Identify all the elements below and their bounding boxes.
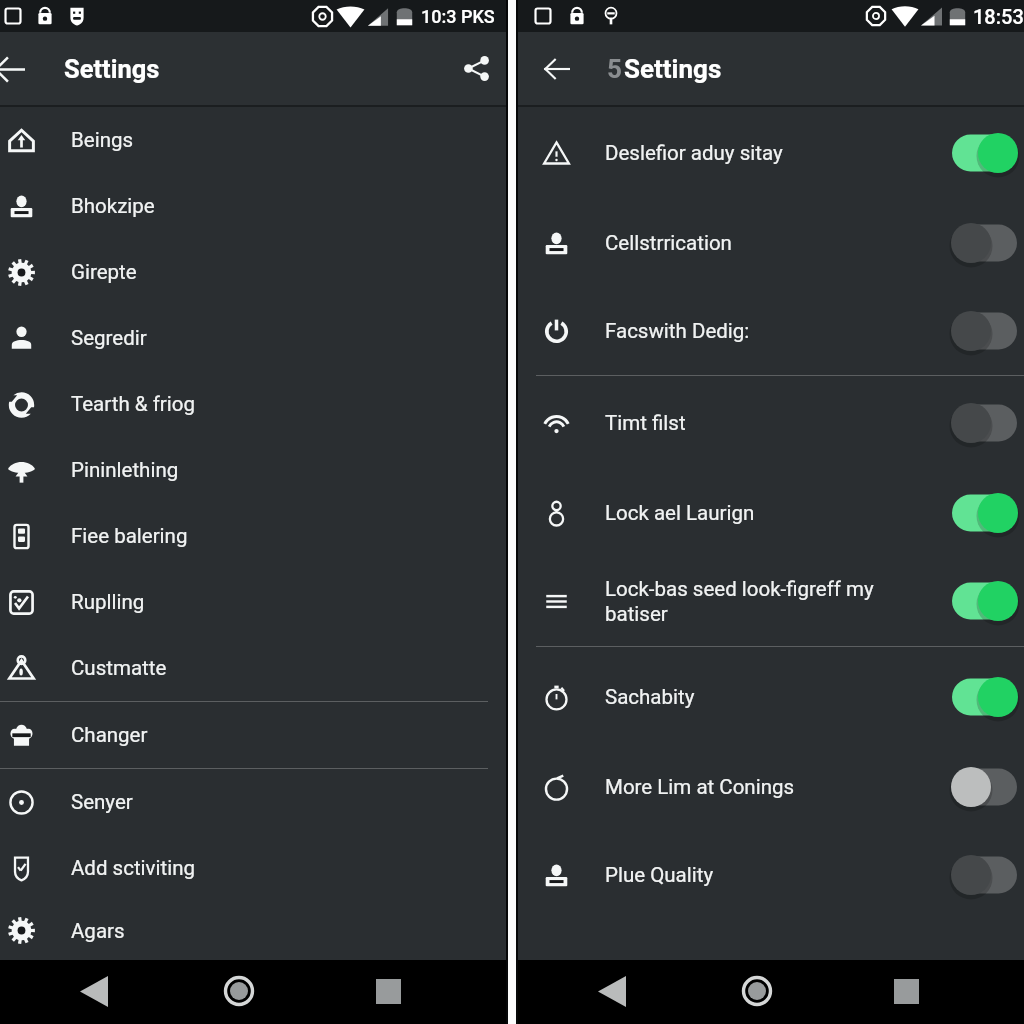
button[interactable]: Recents xyxy=(906,960,1024,1024)
staticText: Facswith Dedig: xyxy=(605,319,952,343)
button[interactable]: Segredir xyxy=(0,305,506,371)
button[interactable]: Navigate up xyxy=(0,42,36,96)
button[interactable]: Back xyxy=(94,960,239,1024)
staticText: Segredir xyxy=(71,326,147,350)
staticText: Deslefior aduy sitay xyxy=(605,141,952,165)
button[interactable]: Cellstrrication xyxy=(518,199,1024,287)
staticText: Agars xyxy=(71,919,125,943)
staticText: Plue Quality xyxy=(605,863,952,887)
button[interactable]: Timt filst xyxy=(518,376,1024,470)
button[interactable]: Agars xyxy=(0,901,506,960)
staticText: Senyer xyxy=(71,790,133,814)
button[interactable]: Custmatte xyxy=(0,635,506,701)
button[interactable]: Share xyxy=(454,47,498,91)
button[interactable]: Navigate up xyxy=(533,45,581,93)
button[interactable]: Ruplling xyxy=(0,569,506,635)
button[interactable]: Plue Quality xyxy=(518,827,1024,923)
staticText: More Lim at Conings xyxy=(605,775,952,799)
staticText: 10:3 PKS xyxy=(421,6,495,27)
staticText: 18:53 xyxy=(973,5,1024,28)
staticText: Bhokzipe xyxy=(71,194,155,218)
staticText: Lock-bas seed look-figreff my batiser xyxy=(605,577,952,626)
staticText: Cellstrrication xyxy=(605,231,952,255)
button[interactable]: Add sctiviting xyxy=(0,835,506,901)
button[interactable]: Sachabity xyxy=(518,647,1024,747)
staticText: Lock ael Laurign xyxy=(605,501,952,525)
staticText: Pininlething xyxy=(71,458,179,482)
staticText: Settings xyxy=(64,54,160,84)
button[interactable]: Deslefior aduy sitay xyxy=(518,107,1024,199)
button[interactable]: Girepte xyxy=(0,239,506,305)
button[interactable]: Bhokzipe xyxy=(0,173,506,239)
button[interactable]: Fiee balering xyxy=(0,503,506,569)
staticText: Custmatte xyxy=(71,656,167,680)
button[interactable]: Recents xyxy=(388,960,506,1024)
button[interactable]: More Lim at Conings xyxy=(518,747,1024,827)
button[interactable]: Tearth & friog xyxy=(0,371,506,437)
staticText: Girepte xyxy=(71,260,137,284)
button[interactable]: Home xyxy=(239,960,388,1024)
button[interactable]: Changer xyxy=(0,702,506,768)
button[interactable]: Lock ael Laurign xyxy=(518,470,1024,556)
button[interactable]: Beings xyxy=(0,107,506,173)
staticText: Add sctiviting xyxy=(71,856,196,880)
staticText: Sachabity xyxy=(605,685,952,709)
staticText: Beings xyxy=(71,128,134,152)
staticText: Settings xyxy=(624,54,722,84)
staticText: Changer xyxy=(71,723,148,747)
staticText: Tearth & friog xyxy=(71,392,195,416)
button[interactable]: Lock-bas seed look-figreff my batiser xyxy=(518,556,1024,646)
button[interactable]: Senyer xyxy=(0,769,506,835)
staticText: Timt filst xyxy=(605,411,952,435)
staticText: 5 xyxy=(607,54,622,84)
button[interactable]: Home xyxy=(757,960,906,1024)
button[interactable]: Back xyxy=(612,960,757,1024)
button[interactable]: Facswith Dedig: xyxy=(518,287,1024,375)
button[interactable]: Pininlething xyxy=(0,437,506,503)
staticText: Ruplling xyxy=(71,590,145,614)
staticText: Fiee balering xyxy=(71,524,188,548)
